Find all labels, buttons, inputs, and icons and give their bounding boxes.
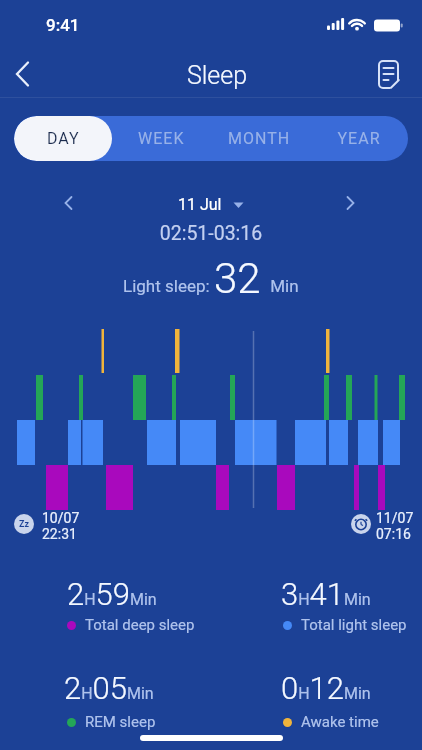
button[interactable] — [335, 188, 367, 218]
staticText: Min — [266, 276, 299, 296]
button[interactable] — [52, 188, 84, 218]
staticText: Light sleep: — [123, 276, 214, 296]
staticText: YEAR — [337, 129, 380, 148]
button[interactable] — [370, 56, 408, 94]
staticText: MONTH — [228, 129, 291, 148]
button[interactable]: MONTH — [210, 116, 309, 161]
staticText: Sleep — [6, 61, 422, 90]
staticText: 0H12Min — [281, 670, 371, 706]
staticText: 07:16 — [376, 526, 411, 542]
staticText: 2H59Min — [67, 576, 157, 612]
button[interactable]: WEEK — [112, 116, 210, 161]
staticText: 11/07 — [376, 510, 414, 526]
staticText: 10/07 — [42, 510, 80, 526]
staticText: 02:51-03:16 — [0, 222, 422, 245]
button[interactable]: 11 Jul — [0, 195, 422, 214]
staticText: DAY — [47, 129, 80, 148]
button[interactable]: DAY — [14, 116, 112, 161]
staticText: WEEK — [138, 129, 185, 148]
staticText: Awake time — [301, 713, 379, 731]
staticText: 11 Jul — [178, 195, 222, 214]
button[interactable] — [6, 56, 42, 92]
staticText: 3H41Min — [281, 576, 371, 612]
staticText: 32 — [214, 254, 261, 300]
button[interactable]: YEAR — [309, 116, 408, 161]
staticText: 22:31 — [42, 526, 77, 542]
staticText: Total light sleep — [301, 616, 407, 634]
staticText: REM sleep — [85, 713, 156, 731]
staticText: 9:41 — [46, 15, 80, 35]
staticText: Total deep sleep — [85, 616, 195, 634]
staticText: Zz — [19, 519, 30, 530]
staticText: 2H05Min — [64, 670, 154, 706]
